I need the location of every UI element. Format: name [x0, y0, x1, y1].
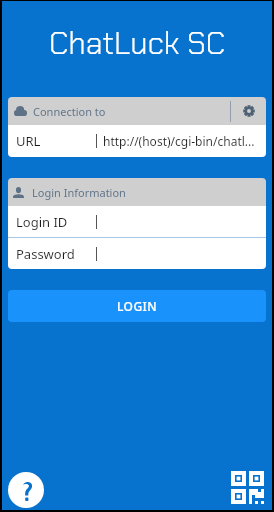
button[interactable]: URL [8, 125, 266, 157]
staticText: URL [16, 132, 96, 150]
button[interactable]: LOGIN [8, 290, 266, 322]
button[interactable]: Login ID [8, 206, 266, 237]
staticText: LOGIN [117, 298, 157, 314]
button[interactable]: Settings [231, 97, 266, 125]
staticText: http://(host)/cgi-bin/chatl... [103, 133, 255, 149]
staticText: Login ID [16, 213, 96, 231]
staticText: Login Information [32, 185, 126, 200]
staticText: Password [16, 245, 96, 263]
staticText: ChatLuck SC [49, 23, 225, 63]
staticText: Connection to [33, 104, 106, 119]
button[interactable]: Password [8, 238, 266, 269]
button[interactable]: Help [8, 472, 44, 508]
button[interactable]: Scan QR code [231, 471, 264, 504]
